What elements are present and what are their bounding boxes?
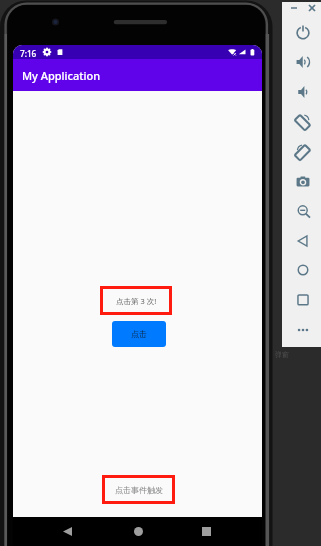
button[interactable]: Home	[126, 519, 150, 543]
button[interactable]: Zoom out	[290, 199, 316, 225]
button[interactable]: More	[290, 317, 316, 343]
button[interactable]: Back	[290, 228, 316, 254]
button[interactable]: Back	[55, 519, 79, 543]
button[interactable]: Home	[290, 257, 316, 283]
button[interactable]: Volume up	[290, 49, 316, 75]
button[interactable]: 点击	[112, 321, 166, 347]
button[interactable]: 点击第 3 次!	[100, 286, 172, 315]
staticText: 点击第 3 次!	[116, 296, 157, 306]
button[interactable]: 点击事件触发	[102, 475, 175, 504]
button[interactable]: Volume down	[290, 79, 316, 105]
button[interactable]: Recent apps	[194, 519, 218, 543]
button[interactable]: Rotate right	[290, 139, 316, 165]
staticText: My Application	[22, 68, 101, 83]
button[interactable]: My Application	[13, 59, 262, 91]
button[interactable]: Overview	[290, 287, 316, 313]
button[interactable]: Rotate left	[290, 109, 316, 135]
staticText: 7:16	[20, 48, 37, 59]
staticText: 弹窗	[275, 350, 289, 359]
button[interactable]: Power	[290, 19, 316, 45]
button[interactable]: Take screenshot	[290, 169, 316, 195]
staticText: 点击	[131, 329, 147, 339]
button[interactable]: Close	[304, 0, 320, 16]
staticText: 点击事件触发	[115, 485, 163, 495]
button[interactable]: Minimize	[286, 0, 302, 16]
